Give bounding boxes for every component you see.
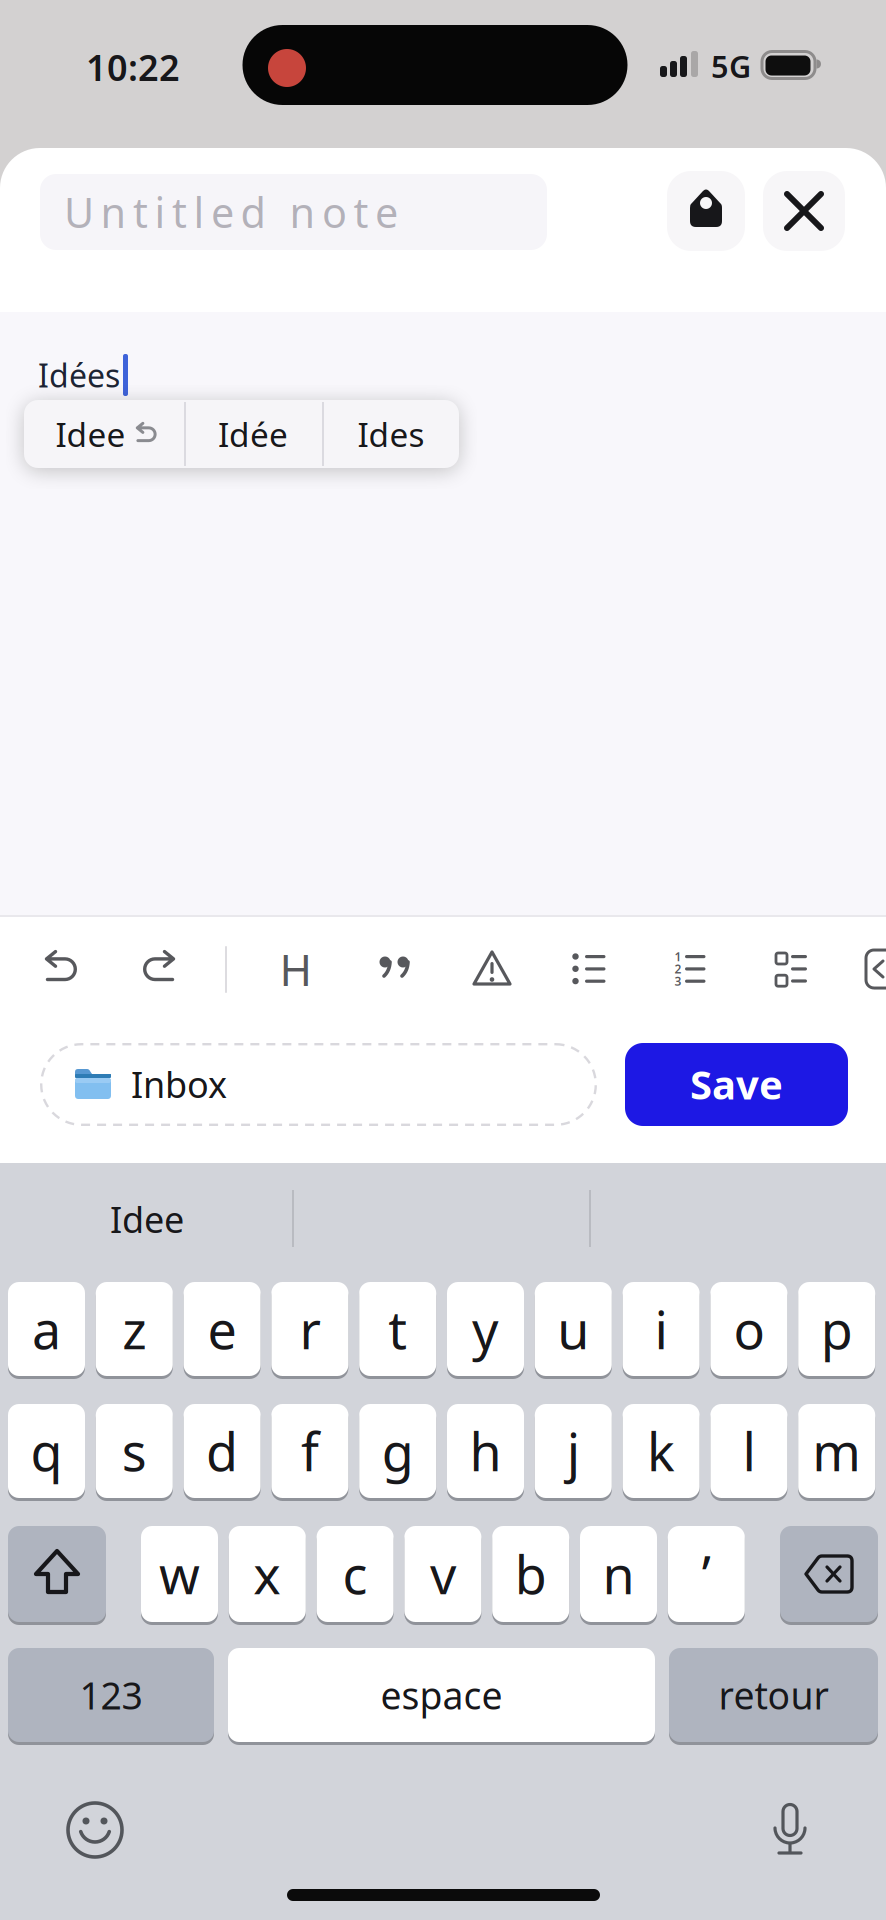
staticText: Untitled note [64,185,398,239]
button[interactable]: ’ [668,1526,745,1625]
staticText: Save [690,1057,783,1110]
button[interactable]: Callout [460,937,524,1001]
button[interactable]: e [184,1282,261,1379]
button[interactable]: Delete [780,1526,878,1625]
button[interactable]: s [96,1404,173,1501]
staticText: 3 [674,973,681,989]
button[interactable]: Code block [857,937,886,1001]
staticText: r [299,1294,320,1364]
staticText: q [30,1416,62,1486]
button[interactable]: Board [758,937,822,1001]
button[interactable]: f [271,1404,348,1501]
button[interactable]: h [447,1404,524,1501]
button[interactable]: Undo [31,937,95,1001]
staticText: g [382,1416,414,1486]
staticText: b [515,1539,547,1609]
staticText: f [301,1416,319,1486]
staticText: j [567,1416,580,1486]
staticText: 2 [674,961,681,977]
button[interactable]: Quote [361,937,425,1001]
staticText: l [742,1416,755,1486]
button[interactable]: Dictation [758,1798,822,1862]
staticText: Idées [38,354,120,396]
button[interactable]: Idee [7,1174,287,1264]
button[interactable]: n [580,1526,657,1625]
button[interactable]: d [184,1404,261,1501]
staticText: Idée [218,412,288,456]
button[interactable]: Untitled note [40,174,547,250]
staticText: v [430,1539,456,1609]
button[interactable]: Idée [185,400,321,468]
button[interactable]: j [535,1404,612,1501]
button[interactable]: q [8,1404,85,1501]
staticText: a [32,1294,61,1364]
button[interactable]: 123 [8,1648,214,1745]
staticText: Idee [55,412,125,456]
staticText: y [472,1294,499,1364]
staticText: x [253,1539,281,1609]
button[interactable]: retour [669,1648,878,1745]
staticText: t [388,1294,407,1364]
button[interactable]: r [271,1282,348,1379]
button[interactable]: Inbox [40,1043,597,1126]
staticText: ’ [702,1539,711,1609]
staticText: Idee [110,1195,184,1243]
staticText: z [122,1294,146,1364]
button[interactable]: k [623,1404,700,1501]
button[interactable]: p [798,1282,875,1379]
button[interactable]: i [623,1282,700,1379]
button[interactable]: a [8,1282,85,1379]
staticText: retour [718,1670,828,1720]
button[interactable]: c [317,1526,394,1625]
staticText: c [343,1539,368,1609]
staticText: 123 [79,1670,142,1720]
button[interactable]: Close [763,171,845,251]
staticText: 5G [711,46,751,86]
staticText: espace [380,1670,502,1720]
button[interactable]: Shift [8,1526,106,1625]
staticText: u [557,1294,589,1364]
staticText: p [821,1294,853,1364]
button[interactable]: g [359,1404,436,1501]
staticText: s [122,1416,147,1486]
button[interactable]: t [359,1282,436,1379]
button[interactable]: u [535,1282,612,1379]
button[interactable]: w [141,1526,218,1625]
staticText: w [159,1539,200,1609]
button[interactable]: Heading [264,937,328,1001]
staticText: e [208,1294,237,1364]
button[interactable]: Save [625,1043,848,1126]
button[interactable]: x [229,1526,306,1625]
staticText: Ides [357,412,424,456]
staticText: 1 [674,948,681,964]
button[interactable]: m [798,1404,875,1501]
staticText: H [279,940,312,998]
button[interactable]: espace [228,1648,655,1745]
button[interactable]: o [710,1282,787,1379]
button[interactable]: l [710,1404,787,1501]
staticText: m [812,1416,861,1486]
button[interactable]: Bulleted list [558,937,622,1001]
staticText: h [469,1416,501,1486]
button[interactable]: v [404,1526,481,1625]
staticText: k [647,1416,675,1486]
staticText: i [655,1294,668,1364]
button[interactable]: Numbered list [657,937,721,1001]
button[interactable]: Ides [323,400,458,468]
staticText: d [206,1416,238,1486]
staticText: Inbox [131,1060,227,1108]
button[interactable]: Tags [667,171,745,251]
button[interactable]: Redo [125,937,189,1001]
button[interactable]: b [492,1526,569,1625]
button[interactable]: y [447,1282,524,1379]
button[interactable]: z [96,1282,173,1379]
staticText: 10:22 [86,43,180,91]
button[interactable]: Idee [29,400,187,468]
staticText: n [602,1539,634,1609]
button[interactable]: Emoji [63,1798,127,1862]
staticText: o [733,1294,764,1364]
